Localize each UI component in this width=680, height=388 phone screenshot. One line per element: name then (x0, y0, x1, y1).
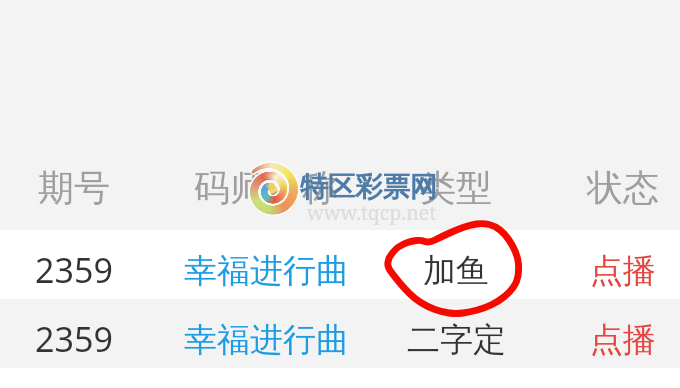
staticText: 点播 (590, 319, 656, 361)
staticText: 期号 (38, 165, 110, 210)
staticText: 加鱼 (423, 250, 489, 292)
staticText: www.tqcp.net (307, 199, 437, 226)
staticText: 二字定 (407, 319, 506, 361)
staticText: 2359 (35, 247, 113, 293)
staticText: 状态 (587, 165, 659, 210)
button[interactable]: 2359 (0, 299, 680, 368)
staticText: 码师名称 (194, 165, 338, 210)
staticText: 特区彩票网 (300, 170, 438, 205)
staticText: 点播 (590, 250, 656, 292)
staticText: 幸福进行曲 (184, 250, 349, 292)
staticText: 幸福进行曲 (184, 319, 349, 361)
staticText: 2359 (35, 316, 113, 362)
staticText: 类型 (420, 165, 492, 210)
button[interactable]: 2359 (0, 230, 680, 299)
